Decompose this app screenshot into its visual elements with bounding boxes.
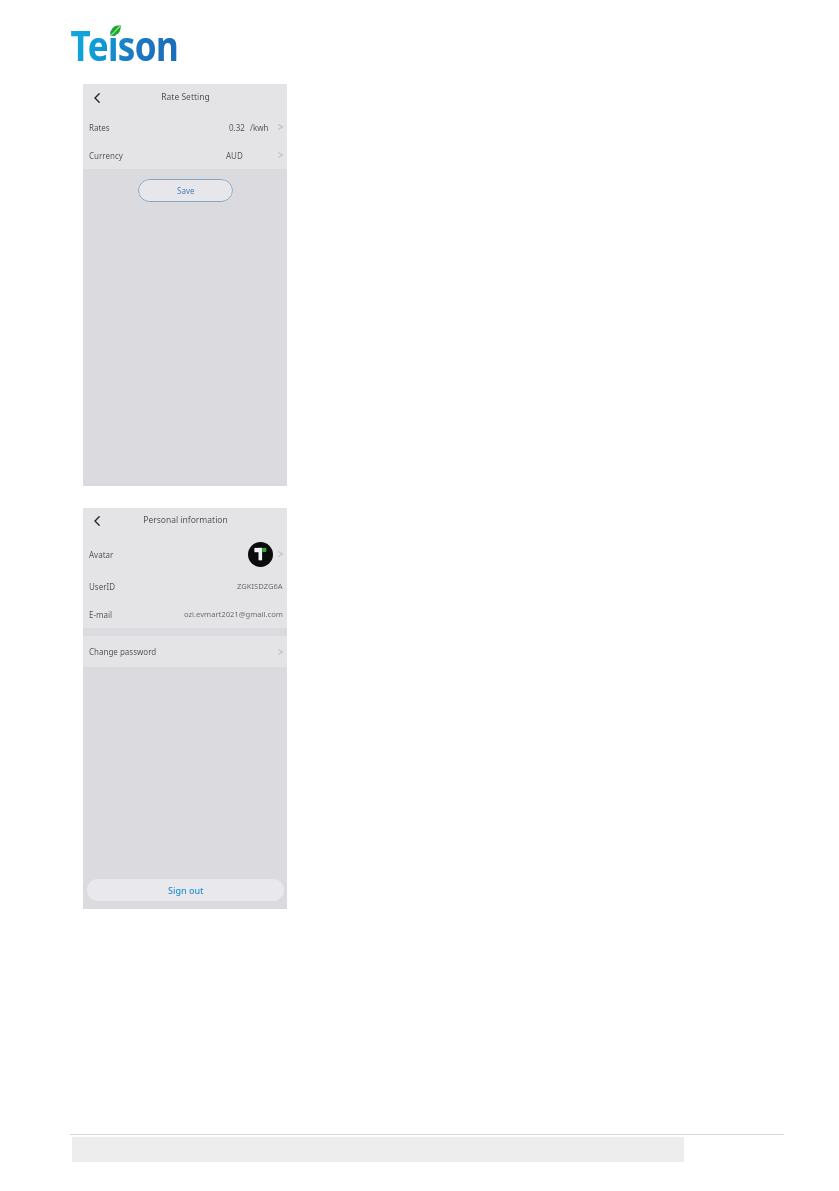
button[interactable]: Currency	[83, 141, 287, 169]
staticText: /kwh	[250, 122, 269, 133]
button[interactable]: Sign out	[87, 879, 284, 901]
button[interactable]: Rates	[83, 113, 287, 141]
staticText: Sign out	[168, 884, 204, 896]
button[interactable]: Change password	[83, 636, 287, 667]
staticText: ozi.evmart2021@gmail.com	[184, 609, 283, 619]
button[interactable]: UserID	[83, 572, 287, 600]
button[interactable]: Save	[138, 179, 233, 202]
staticText: Rates	[89, 122, 110, 133]
staticText: Change password	[89, 646, 157, 657]
staticText: Teison	[71, 17, 178, 73]
staticText: AUD	[226, 150, 243, 161]
staticText: Avatar	[89, 549, 114, 560]
staticText: Save	[177, 185, 195, 196]
button[interactable]: Back	[88, 512, 106, 530]
staticText: UserID	[89, 581, 116, 592]
button[interactable]: Avatar	[83, 536, 287, 572]
staticText: ZGKISDZG6A	[237, 581, 283, 591]
staticText: Rate Setting	[161, 91, 210, 103]
staticText: 0.32	[229, 122, 245, 133]
button[interactable]: E-mail	[83, 600, 287, 628]
button[interactable]: Back	[88, 89, 106, 107]
staticText: Currency	[89, 150, 123, 161]
staticText: Personal information	[143, 514, 228, 526]
staticText: E-mail	[89, 609, 113, 620]
